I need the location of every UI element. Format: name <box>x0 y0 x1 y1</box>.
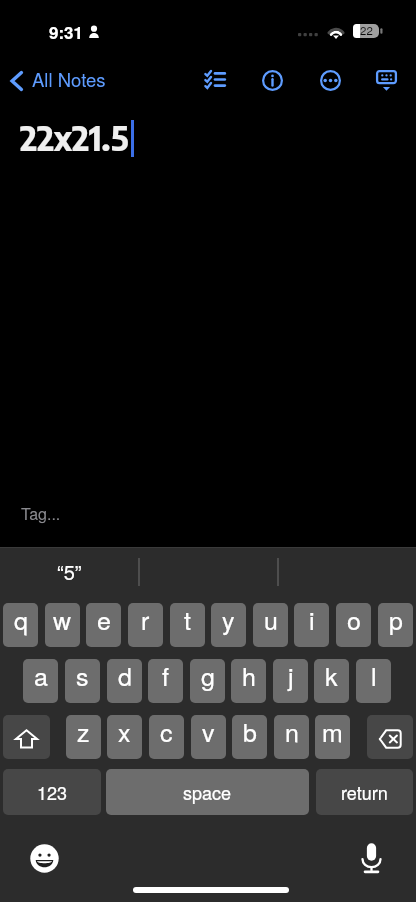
button[interactable]: q <box>3 603 38 647</box>
button[interactable]: i <box>294 603 329 647</box>
staticText: e <box>97 603 111 637</box>
staticText: p <box>389 603 403 637</box>
button[interactable]: e <box>86 603 121 647</box>
staticText: s <box>76 659 89 693</box>
button[interactable]: p <box>378 603 413 647</box>
button[interactable]: l <box>356 659 391 703</box>
staticText: f <box>162 659 169 693</box>
button[interactable]: All Notes <box>6 62 112 96</box>
staticText: b <box>243 715 257 749</box>
button[interactable]: b <box>232 715 267 759</box>
staticText: 9:31 <box>49 20 84 44</box>
button[interactable]: x <box>107 715 142 759</box>
button[interactable]: Shift <box>3 715 50 759</box>
button[interactable]: Hide keyboard <box>364 58 408 102</box>
staticText: y <box>222 603 235 637</box>
button[interactable]: r <box>128 603 163 647</box>
staticText: d <box>118 659 132 693</box>
button[interactable]: j <box>273 659 308 703</box>
staticText: t <box>184 603 191 637</box>
staticText: c <box>160 715 173 749</box>
staticText: return <box>341 779 388 805</box>
staticText: h <box>242 659 256 693</box>
staticText: u <box>264 603 278 637</box>
staticText: 22 <box>360 22 373 36</box>
button[interactable]: a <box>23 659 58 703</box>
button[interactable]: n <box>274 715 309 759</box>
button[interactable]: Dictation <box>357 842 385 874</box>
staticText: q <box>14 603 28 637</box>
staticText: k <box>325 659 338 693</box>
staticText: o <box>347 603 361 637</box>
staticText: g <box>201 659 215 693</box>
staticText: z <box>77 715 90 749</box>
staticText: “5” <box>57 557 82 586</box>
button[interactable]: s <box>65 659 100 703</box>
button[interactable]: c <box>149 715 184 759</box>
button[interactable]: t <box>170 603 205 647</box>
staticText: m <box>322 715 343 749</box>
button[interactable]: o <box>336 603 371 647</box>
button[interactable]: f <box>148 659 183 703</box>
button[interactable]: More <box>308 58 352 102</box>
staticText: i <box>309 603 315 637</box>
staticText: Tag... <box>21 502 61 525</box>
staticText: n <box>285 715 299 749</box>
button[interactable]: d <box>107 659 142 703</box>
staticText: space <box>183 779 232 805</box>
button[interactable]: u <box>253 603 288 647</box>
button[interactable]: w <box>45 603 80 647</box>
staticText: l <box>371 659 377 693</box>
button[interactable]: Backspace <box>367 715 413 759</box>
button[interactable]: return <box>316 769 413 815</box>
button[interactable]: Emoji <box>30 844 59 873</box>
button[interactable]: space <box>106 769 309 815</box>
button[interactable]: h <box>231 659 266 703</box>
staticText: w <box>53 603 72 637</box>
button[interactable]: m <box>315 715 350 759</box>
staticText: a <box>34 659 48 693</box>
staticText: 22x21.5 <box>20 116 129 159</box>
staticText: j <box>288 659 294 693</box>
button[interactable]: z <box>66 715 101 759</box>
button[interactable]: v <box>191 715 226 759</box>
button[interactable]: 123 <box>3 769 101 815</box>
staticText: 123 <box>37 779 68 805</box>
button[interactable]: Checklist <box>193 57 237 101</box>
staticText: v <box>202 715 215 749</box>
staticText: All Notes <box>32 66 106 92</box>
button[interactable]: y <box>211 603 246 647</box>
button[interactable]: “5” <box>0 548 138 596</box>
button[interactable]: k <box>314 659 349 703</box>
staticText: x <box>118 715 131 749</box>
button[interactable]: g <box>190 659 225 703</box>
staticText: r <box>141 603 150 637</box>
button[interactable]: Info <box>250 58 294 102</box>
